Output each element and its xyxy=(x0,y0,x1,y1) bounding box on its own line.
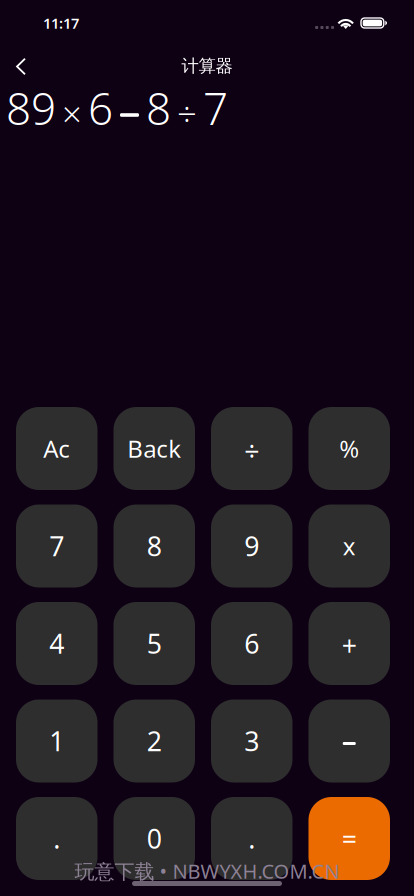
staticText: 0 xyxy=(147,821,162,856)
staticText: . xyxy=(248,821,255,856)
button[interactable]: 8 xyxy=(113,504,195,587)
staticText: Ac xyxy=(43,433,70,464)
staticText: 11:17 xyxy=(43,13,79,33)
button[interactable]: . xyxy=(211,797,292,880)
staticText: ÷ xyxy=(177,90,197,136)
button[interactable]: 5 xyxy=(113,602,195,685)
button[interactable]: 0 xyxy=(113,797,195,880)
staticText: × xyxy=(62,90,82,136)
staticText: 2 xyxy=(147,723,162,759)
staticText: % xyxy=(339,433,359,464)
button[interactable]: + xyxy=(308,602,390,685)
staticText: x xyxy=(343,530,356,562)
button[interactable]: Back xyxy=(113,407,195,490)
button[interactable]: 9 xyxy=(211,504,292,587)
staticText: 6 xyxy=(244,626,259,661)
button[interactable]: 4 xyxy=(16,602,97,685)
staticText: . xyxy=(53,821,60,856)
button[interactable]: 3 xyxy=(211,699,292,782)
staticText: 计算器 xyxy=(181,55,232,77)
button[interactable] xyxy=(308,699,390,782)
staticText: 8 xyxy=(146,79,171,137)
button[interactable]: 6 xyxy=(211,602,292,685)
staticText: = xyxy=(342,821,357,856)
staticText: 7 xyxy=(203,79,228,137)
staticText: 1 xyxy=(49,723,64,759)
staticText: 5 xyxy=(147,626,162,661)
button[interactable]: ÷ xyxy=(211,407,292,490)
button[interactable]: 7 xyxy=(16,504,97,587)
staticText: 6 xyxy=(88,79,113,137)
staticText: ÷ xyxy=(244,433,259,468)
staticText: 89 xyxy=(6,79,56,137)
button[interactable]: Ac xyxy=(16,407,97,490)
staticText: + xyxy=(342,628,357,663)
staticText: 3 xyxy=(244,723,259,759)
staticText: 4 xyxy=(49,626,64,661)
staticText: 8 xyxy=(147,528,162,564)
button[interactable]: x xyxy=(308,504,390,587)
button[interactable]: % xyxy=(308,407,390,490)
staticText: 7 xyxy=(49,528,64,564)
staticText: 玩意下载 • NBWYXH.COM.CN xyxy=(74,858,339,884)
button[interactable]: 2 xyxy=(113,699,195,782)
button[interactable]: 1 xyxy=(16,699,97,782)
button[interactable]: . xyxy=(16,797,97,880)
button[interactable]: = xyxy=(308,797,390,880)
button[interactable]: Back xyxy=(4,49,38,83)
staticText: 9 xyxy=(244,528,259,564)
staticText: Back xyxy=(127,433,181,464)
